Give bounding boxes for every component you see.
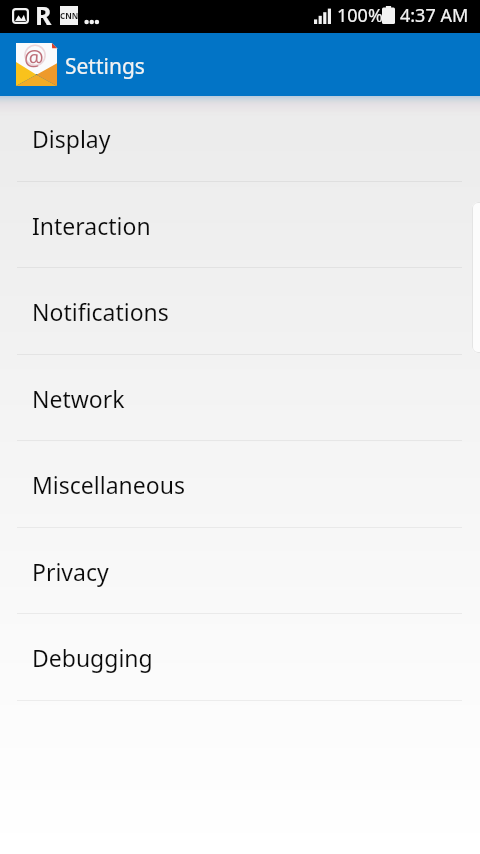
staticText: Miscellaneous xyxy=(32,469,185,500)
staticText: 100% xyxy=(337,3,383,28)
staticText: Interaction xyxy=(32,210,151,241)
other: Battery full xyxy=(382,6,395,24)
button[interactable]: Network xyxy=(0,356,480,443)
staticText: Debugging xyxy=(32,642,153,673)
button[interactable]: Display xyxy=(0,96,480,183)
staticText: Settings xyxy=(65,52,145,81)
staticText: Display xyxy=(32,123,111,154)
staticText: R xyxy=(35,0,52,31)
staticText: @ xyxy=(24,42,44,72)
other: More notifications xyxy=(83,18,101,27)
staticText: 4:37 AM xyxy=(400,3,469,28)
button[interactable]: Miscellaneous xyxy=(0,442,480,529)
button[interactable]: Interaction xyxy=(0,183,480,270)
staticText: Privacy xyxy=(32,556,109,587)
other: Screenshot captured xyxy=(12,8,29,24)
staticText: CNN xyxy=(60,10,78,21)
button[interactable]: @ xyxy=(8,33,208,96)
button[interactable]: Notifications xyxy=(0,269,480,356)
button[interactable]: Privacy xyxy=(0,529,480,616)
other: Signal strength xyxy=(314,7,333,24)
button[interactable]: Debugging xyxy=(0,615,480,702)
staticText: Network xyxy=(32,383,125,414)
staticText: Notifications xyxy=(32,296,169,327)
